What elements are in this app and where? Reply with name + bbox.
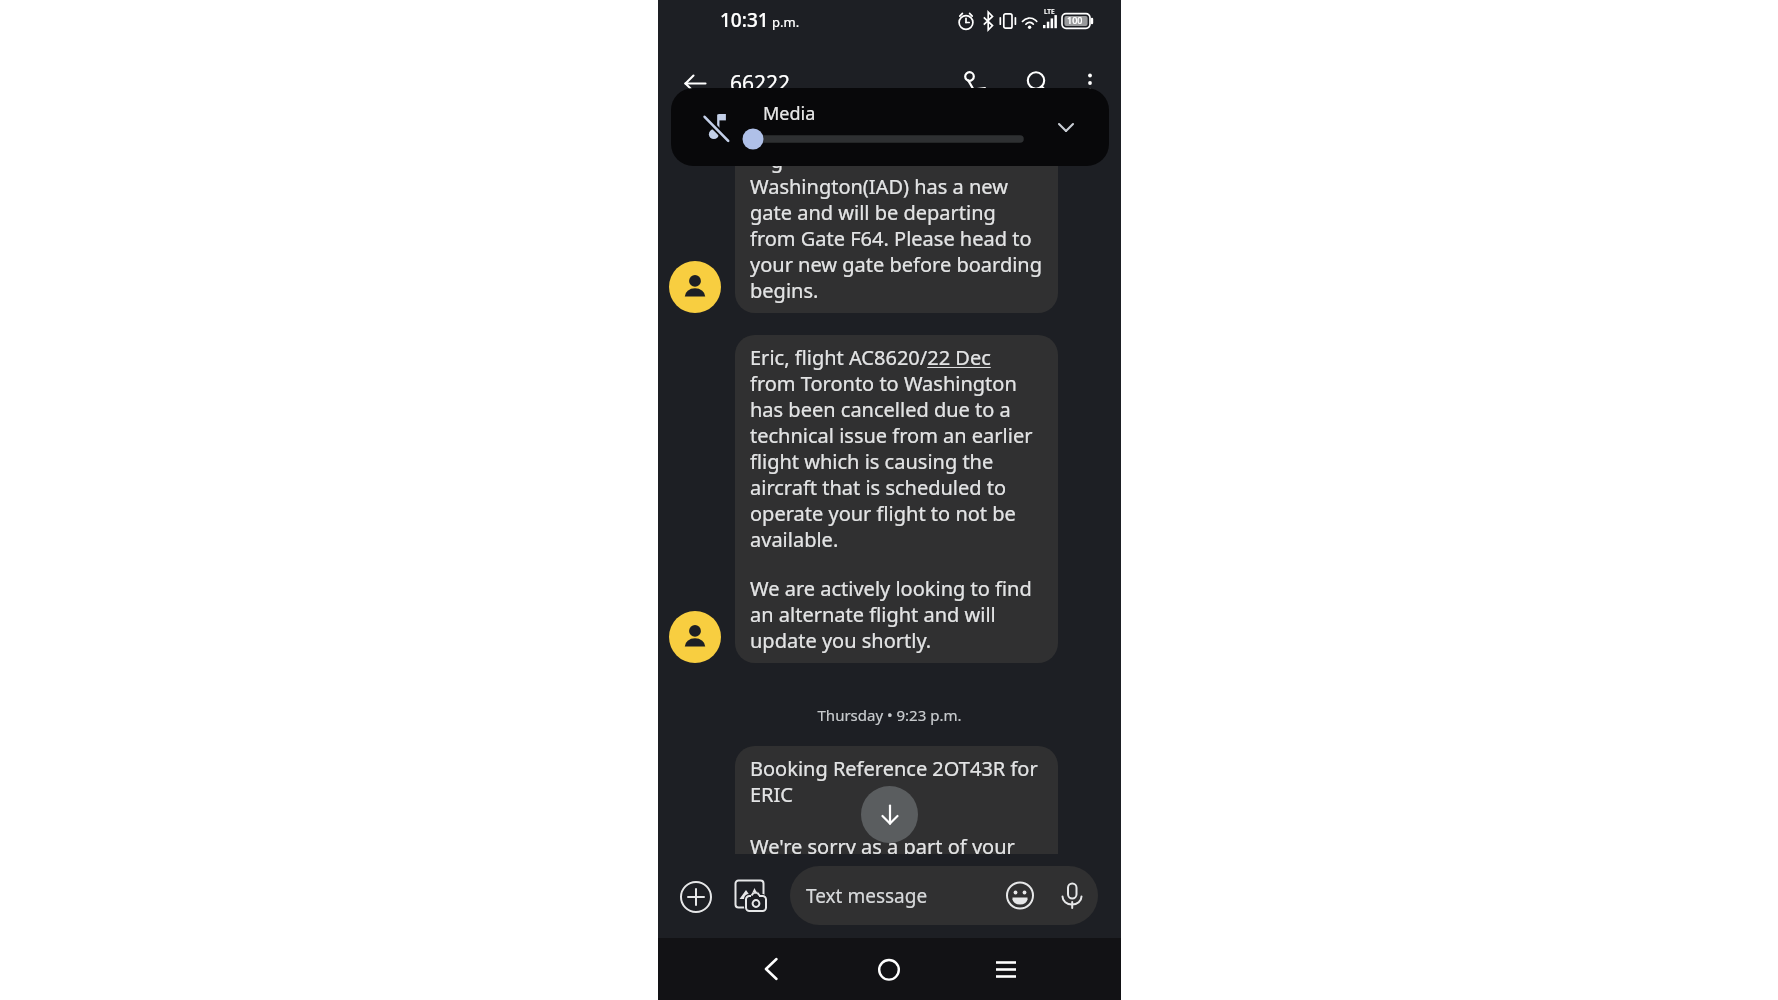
button[interactable]: Home xyxy=(867,947,911,991)
button[interactable]: Add attachment xyxy=(673,874,719,920)
staticText: Booking Reference 2OT43R for ERIC We're … xyxy=(750,755,1038,886)
button[interactable]: Back xyxy=(751,947,795,991)
staticText: Thursday • 9:23 p.m. xyxy=(658,705,1121,725)
button[interactable]: Media xyxy=(671,88,1109,166)
staticText: p.m. xyxy=(772,13,800,31)
button[interactable]: More options xyxy=(1070,63,1110,103)
button[interactable]: Call xyxy=(953,61,997,105)
staticText: 10:31 xyxy=(720,7,769,33)
button[interactable]: Recent apps xyxy=(984,947,1028,991)
staticText: We are actively looking to find an alter… xyxy=(750,575,1032,654)
button[interactable]: Text message xyxy=(790,866,1098,925)
button[interactable]: Camera and gallery xyxy=(728,872,774,918)
button[interactable]: Back xyxy=(674,62,716,104)
staticText: LTE xyxy=(1044,7,1055,16)
button[interactable]: g Washington(IAD) has a new gate and wil… xyxy=(735,138,1058,313)
staticText: g Washington(IAD) has a new gate and wil… xyxy=(750,147,1042,304)
button[interactable]: Eric, flight AC8620/22 Dec from Toronto … xyxy=(735,335,1058,663)
button[interactable]: Search xyxy=(1016,61,1060,105)
staticText: Eric, flight AC8620/22 Dec from Toronto … xyxy=(750,344,1033,553)
staticText: Media xyxy=(763,101,816,126)
staticText: Text message xyxy=(806,883,928,909)
button[interactable]: Expand volume controls xyxy=(1046,107,1086,147)
button[interactable]: Booking Reference 2OT43R for ERIC We're … xyxy=(735,746,1058,895)
button[interactable]: Scroll to bottom xyxy=(861,786,918,843)
staticText: 100 xyxy=(1067,14,1083,26)
staticText: 66222 xyxy=(730,69,791,98)
